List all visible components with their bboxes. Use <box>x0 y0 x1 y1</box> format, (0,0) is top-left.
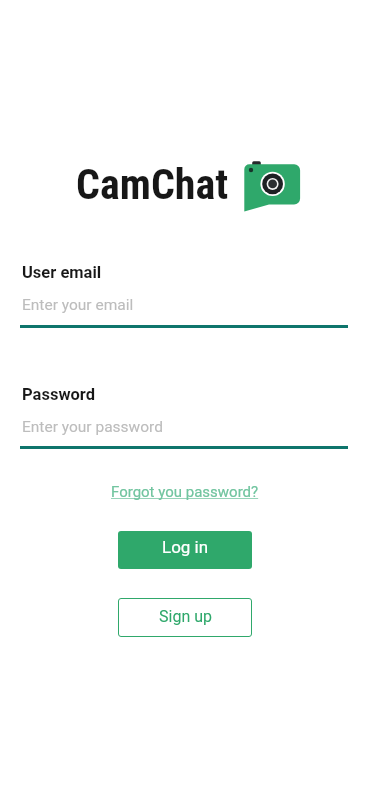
button[interactable]: Log in <box>118 531 252 569</box>
staticText: User email <box>22 263 102 282</box>
staticText: Password <box>22 385 96 404</box>
staticText: Enter your email <box>22 296 134 314</box>
staticText: Enter your password <box>22 418 163 436</box>
staticText: Forgot you password? <box>111 483 259 501</box>
button[interactable]: Sign up <box>118 598 252 637</box>
staticText: CamChat <box>76 160 229 209</box>
staticText: Log in <box>162 537 209 557</box>
button[interactable]: Forgot you password? <box>0 483 369 501</box>
staticText: Sign up <box>159 607 212 626</box>
